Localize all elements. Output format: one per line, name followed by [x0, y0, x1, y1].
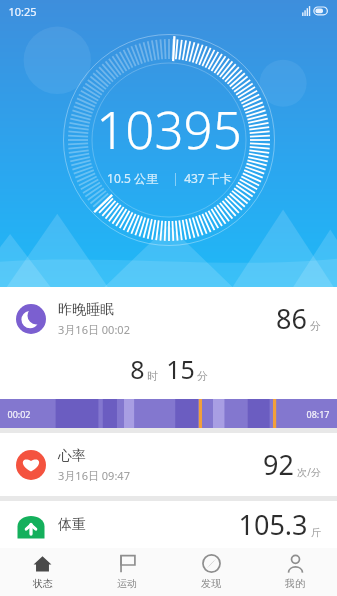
staticText: 体重	[58, 516, 86, 534]
staticText: 92	[263, 446, 294, 483]
button[interactable]: 发现	[169, 548, 253, 596]
staticText: 8	[130, 352, 145, 386]
button[interactable]: 状态	[0, 548, 85, 596]
staticText: 10.5 公里	[107, 170, 158, 186]
staticText: 86	[276, 300, 307, 337]
staticText: 我的	[285, 577, 305, 590]
staticText: 10:25	[8, 4, 37, 19]
staticText: 心率	[58, 447, 86, 465]
staticText: 分	[310, 319, 321, 333]
staticText: 08:17	[306, 408, 330, 420]
staticText: 437 千卡	[184, 170, 232, 186]
staticText: 发现	[201, 577, 221, 590]
staticText: 分	[197, 369, 208, 383]
staticText: 3月16日 09:47	[58, 468, 130, 483]
staticText: 10395	[96, 94, 242, 163]
staticText: 105.3	[238, 506, 308, 543]
staticText: 昨晚睡眠	[58, 301, 114, 319]
staticText: 3月16日 00:02	[58, 322, 130, 337]
button[interactable]: 昨晚睡眠	[0, 287, 337, 428]
button[interactable]: 运动	[85, 548, 169, 596]
staticText: 运动	[117, 577, 137, 590]
staticText: 00:02	[7, 408, 31, 420]
staticText: 15	[166, 352, 195, 386]
staticText: 斤	[311, 526, 321, 539]
button[interactable]: 我的	[253, 548, 337, 596]
button[interactable]: 心率	[0, 433, 337, 496]
staticText: 状态	[33, 577, 53, 590]
staticText: 时	[147, 369, 158, 383]
staticText: 次/分	[297, 465, 321, 479]
staticText: |	[158, 170, 184, 186]
button[interactable]: 体重	[0, 501, 337, 548]
